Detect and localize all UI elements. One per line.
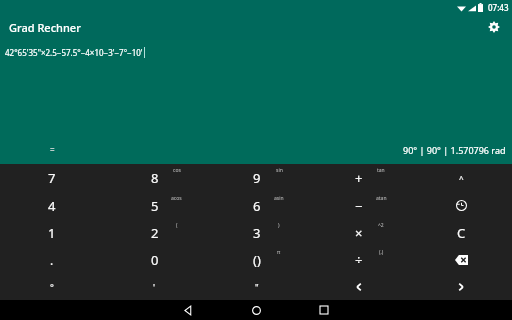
staticText: cos xyxy=(173,167,181,174)
button[interactable]: Settings xyxy=(484,17,504,37)
button[interactable]: sin xyxy=(206,164,308,192)
staticText: 1 xyxy=(48,224,56,242)
staticText: sin xyxy=(276,167,283,174)
button[interactable]: cos xyxy=(103,164,206,192)
staticText: 2 xyxy=(151,224,159,242)
button[interactable]: Home xyxy=(245,300,267,320)
button[interactable]: acos xyxy=(103,192,206,219)
button[interactable]: ^2 xyxy=(308,219,410,246)
button[interactable]: tan xyxy=(308,164,410,192)
staticText: ° xyxy=(50,281,54,293)
button[interactable]: ^ xyxy=(410,164,512,192)
button[interactable]: Recents xyxy=(313,300,335,320)
staticText: ÷ xyxy=(355,251,363,269)
staticText: 4 xyxy=(48,197,56,215)
button[interactable]: Backspace xyxy=(410,246,512,273)
staticText: ^ xyxy=(459,173,464,184)
staticText: 9 xyxy=(253,169,261,187)
button[interactable]: Move cursor left xyxy=(308,273,410,300)
button[interactable]: ) xyxy=(206,219,308,246)
button[interactable]: (,) xyxy=(308,246,410,273)
button[interactable]: ( xyxy=(103,219,206,246)
staticText: C xyxy=(457,224,466,242)
button[interactable]: π xyxy=(206,246,308,273)
staticText: ^2 xyxy=(378,222,384,229)
staticText: ) xyxy=(278,222,280,229)
staticText: 7 xyxy=(48,169,56,187)
button[interactable]: asin xyxy=(206,192,308,219)
staticText: + xyxy=(355,169,363,187)
staticText: × xyxy=(355,224,363,242)
staticText: 6 xyxy=(253,197,261,215)
staticText: " xyxy=(255,281,259,293)
button[interactable]: 1 xyxy=(0,219,103,246)
staticText: acos xyxy=(171,195,182,202)
staticText: ( xyxy=(176,222,178,229)
button[interactable]: ° xyxy=(0,273,103,300)
staticText: atan xyxy=(376,195,387,202)
button[interactable]: ' xyxy=(103,273,206,300)
button[interactable]: 4 xyxy=(0,192,103,219)
staticText: 3 xyxy=(253,224,261,242)
staticText: π xyxy=(277,249,281,256)
staticText: 90° | 90° | 1.570796 rad xyxy=(403,144,506,156)
button[interactable]: . xyxy=(0,246,103,273)
staticText: tan xyxy=(377,167,385,174)
staticText: − xyxy=(355,197,363,215)
staticText: () xyxy=(253,251,261,269)
button[interactable]: " xyxy=(206,273,308,300)
staticText: 8 xyxy=(151,169,159,187)
staticText: 07:43 xyxy=(488,2,509,13)
staticText: Grad Rechner xyxy=(9,20,81,35)
staticText: (,) xyxy=(379,249,384,256)
staticText: 0 xyxy=(151,251,159,269)
staticText: = xyxy=(50,144,55,155)
staticText: asin xyxy=(274,195,284,202)
button[interactable]: 0 xyxy=(103,246,206,273)
staticText: 42°65'35"×2.5−57.5°−4×10−3'−7°−10' xyxy=(5,47,143,58)
button[interactable]: Back xyxy=(177,300,199,320)
button[interactable]: History xyxy=(410,192,512,219)
button[interactable]: atan xyxy=(308,192,410,219)
button[interactable]: Move cursor right xyxy=(410,273,512,300)
staticText: ' xyxy=(153,281,156,293)
button[interactable]: 7 xyxy=(0,164,103,192)
button[interactable]: C xyxy=(410,219,512,246)
staticText: . xyxy=(50,252,54,268)
staticText: 5 xyxy=(151,197,159,215)
